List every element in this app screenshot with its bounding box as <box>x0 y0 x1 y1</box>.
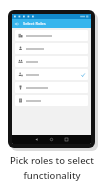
staticText: Pick roles to select <box>10 154 94 167</box>
button[interactable] <box>15 43 88 54</box>
button[interactable]: Back <box>12 19 21 28</box>
staticText: Select Roles <box>23 21 46 26</box>
button[interactable]: Home <box>47 135 56 144</box>
button[interactable] <box>15 82 88 93</box>
button[interactable]: Recent apps <box>62 135 71 144</box>
button[interactable] <box>15 95 88 106</box>
button[interactable] <box>15 56 88 67</box>
button[interactable] <box>15 30 88 41</box>
staticText: functionality <box>23 169 81 182</box>
button[interactable]: Back <box>32 135 41 144</box>
button[interactable] <box>15 69 88 80</box>
